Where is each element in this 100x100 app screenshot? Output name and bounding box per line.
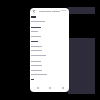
button[interactable] [30, 15, 69, 19]
button[interactable] [30, 78, 69, 82]
button[interactable]: Back [31, 9, 36, 14]
button[interactable] [30, 40, 69, 44]
button[interactable] [30, 20, 69, 24]
button[interactable] [30, 64, 69, 68]
staticText: Notification settings [30, 10, 69, 13]
button[interactable] [30, 60, 69, 64]
button[interactable]: Profile [57, 84, 68, 92]
button[interactable] [30, 35, 69, 39]
button[interactable] [30, 26, 69, 30]
button[interactable]: Search [44, 84, 55, 92]
button[interactable] [30, 45, 69, 49]
button[interactable] [30, 69, 69, 73]
button[interactable]: Home [32, 84, 43, 92]
button[interactable] [30, 49, 69, 53]
button[interactable] [30, 73, 69, 77]
button[interactable] [30, 54, 69, 58]
button[interactable] [30, 30, 69, 34]
